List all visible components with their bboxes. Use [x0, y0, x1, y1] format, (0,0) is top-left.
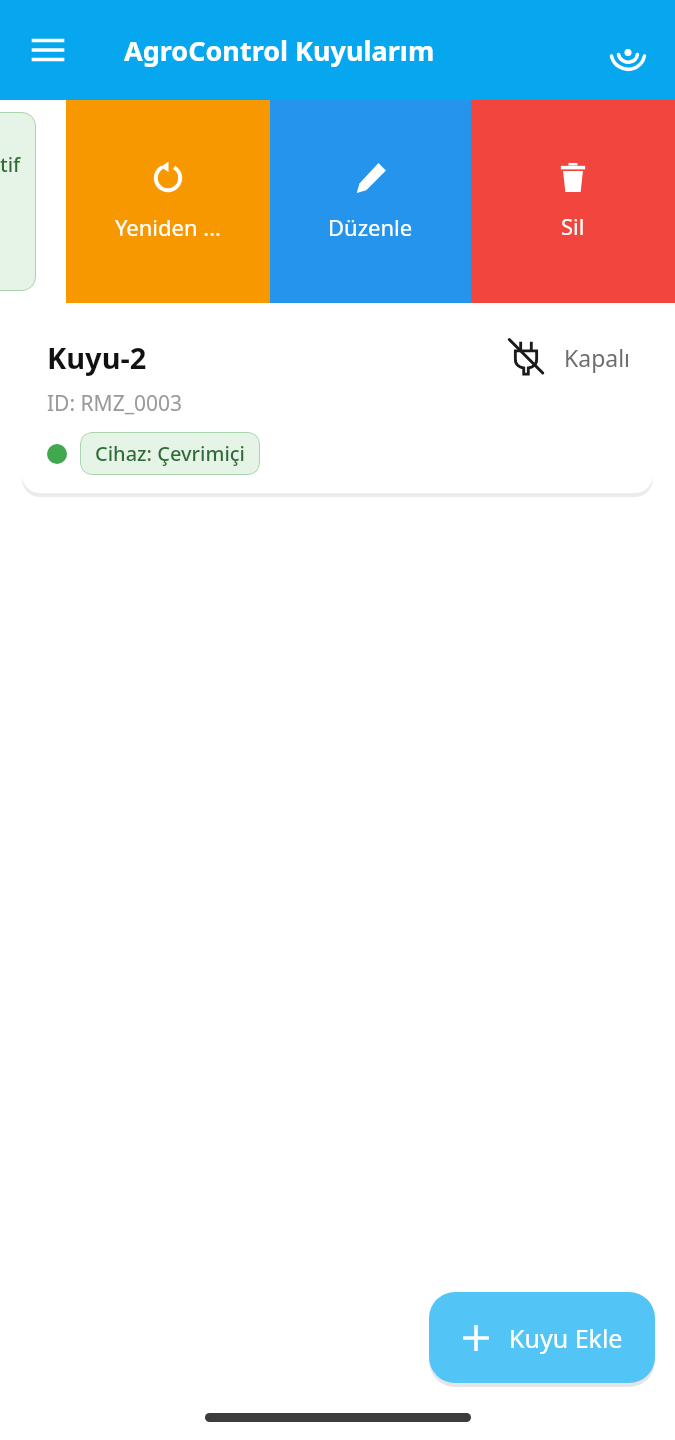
button[interactable]: Yeniden ...: [66, 100, 270, 303]
staticText: Kuyu-2: [47, 338, 147, 377]
button[interactable]: Düzenle: [270, 100, 471, 303]
staticText: tif: [0, 151, 21, 178]
staticText: Düzenle: [328, 212, 413, 242]
button[interactable]: Kuyu Ekle: [429, 1292, 655, 1383]
staticText: Sil: [561, 211, 585, 241]
button[interactable]: Kuyu-2: [22, 313, 653, 493]
button[interactable]: Broadcast: [595, 17, 661, 83]
staticText: Kapalı: [564, 342, 631, 373]
staticText: Yeniden ...: [115, 212, 221, 242]
staticText: AgroControl Kuyularım: [124, 32, 435, 69]
staticText: ID: RMZ_0003: [47, 389, 183, 418]
button[interactable]: Sil: [471, 100, 675, 303]
staticText: Kuyu Ekle: [509, 1321, 623, 1355]
button[interactable]: Menu: [14, 16, 82, 84]
other: Power off: [504, 335, 548, 379]
staticText: Cihaz: Çevrimiçi: [95, 440, 245, 467]
